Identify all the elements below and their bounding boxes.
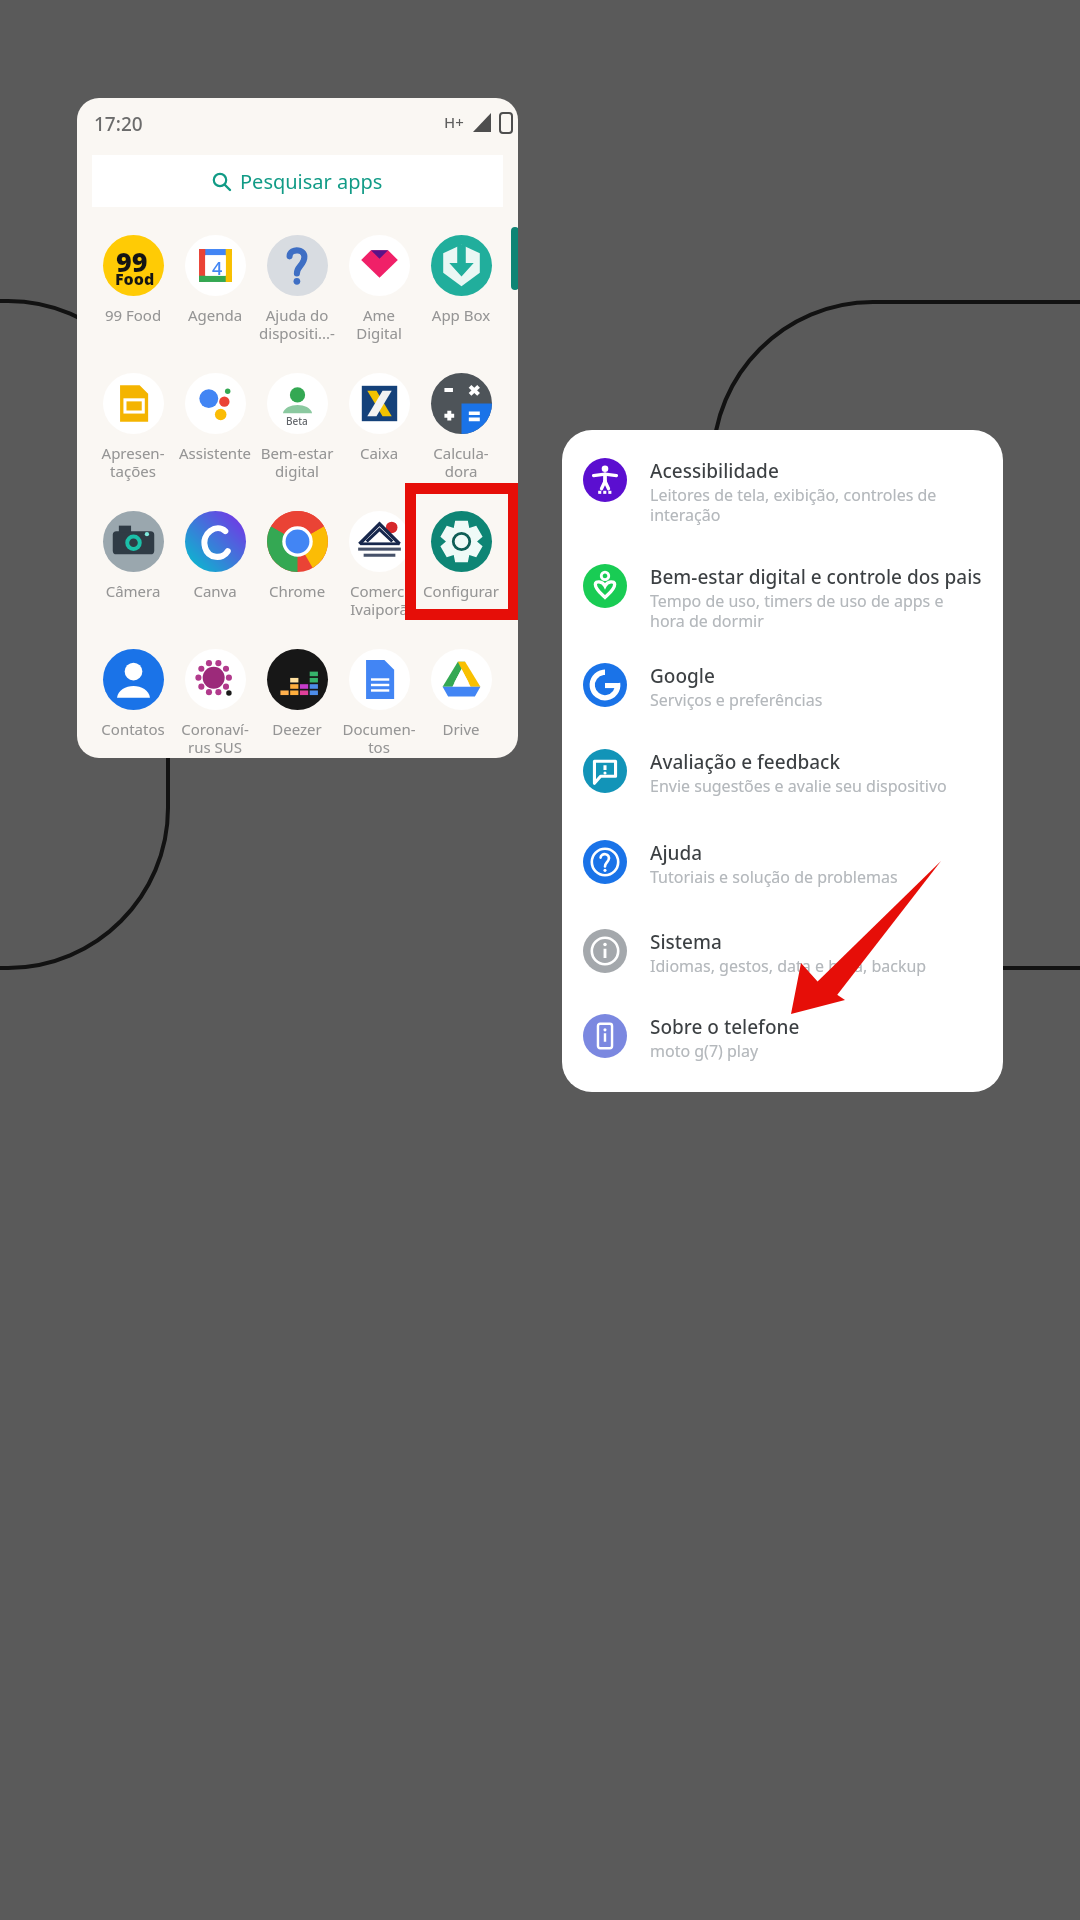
button[interactable]: Configurar (420, 511, 502, 621)
button[interactable]: Coronaví- rus SUS (174, 649, 256, 758)
button[interactable]: Deezer (256, 649, 338, 758)
staticText: Contatos (92, 719, 174, 739)
staticText: App Box (420, 305, 502, 325)
button[interactable]: Documen- tos (338, 649, 420, 758)
button[interactable]: Ajuda do dispositi...- (256, 235, 338, 345)
staticText: Calcula- dora (420, 443, 502, 482)
button[interactable]: Apresen- tações (92, 373, 174, 483)
staticText: 99 (116, 243, 148, 280)
staticText: Leitores de tela, exibição, controles de… (650, 484, 937, 525)
staticText: Documen- tos (338, 719, 420, 758)
staticText: Configurar (420, 581, 502, 601)
button[interactable]: Calcula- dora (420, 373, 502, 483)
button[interactable]: Bem-estar digital e controle dos pais (562, 544, 1003, 628)
staticText: 99 Food (92, 305, 174, 325)
button[interactable]: Pesquisar apps (92, 155, 503, 207)
button[interactable]: Comerci Ivaiporã (338, 511, 420, 621)
button[interactable]: Assistente (174, 373, 256, 483)
staticText: Assistente (174, 443, 256, 463)
staticText: Agenda (174, 305, 256, 325)
staticText: Bem-estar digital e controle dos pais (650, 564, 982, 590)
button[interactable]: Ame Digital (338, 235, 420, 345)
staticText: Envie sugestões e avalie seu dispositivo (650, 775, 947, 797)
button[interactable]: Sobre o telefone (562, 994, 1003, 1078)
staticText: Pesquisar apps (240, 168, 383, 195)
staticText: Acessibilidade (650, 458, 779, 484)
staticText: Apresen- tações (92, 443, 174, 482)
button[interactable]: Chrome (256, 511, 338, 621)
button[interactable]: Acessibilidade (562, 438, 1003, 522)
staticText: Canva (174, 581, 256, 601)
staticText: Beta (286, 414, 308, 428)
staticText: Drive (420, 719, 502, 739)
staticText: 17:20 (94, 111, 143, 137)
staticText: H+ (444, 112, 464, 132)
staticText: Chrome (256, 581, 338, 601)
button[interactable]: Avaliação e feedback (562, 729, 1003, 813)
button[interactable]: Beta (256, 373, 338, 483)
staticText: Avaliação e feedback (650, 749, 841, 775)
button[interactable]: Canva (174, 511, 256, 621)
staticText: Google (650, 663, 715, 689)
button[interactable]: Google (562, 643, 1003, 727)
button[interactable]: 99 (92, 235, 174, 345)
staticText: Serviços e preferências (650, 689, 823, 711)
staticText: Sistema (650, 929, 722, 955)
staticText: Sobre o telefone (650, 1014, 800, 1040)
button[interactable]: Caixa (338, 373, 420, 483)
staticText: Ajuda do dispositi...- (256, 305, 338, 344)
staticText: Ame Digital (338, 305, 420, 344)
staticText: Coronaví- rus SUS (174, 719, 256, 758)
staticText: Bem-estar digital (256, 443, 338, 482)
button[interactable]: Sistema (562, 909, 1003, 993)
staticText: Idiomas, gestos, data e hora, backup (650, 955, 927, 977)
staticText: moto g(7) play (650, 1040, 759, 1062)
staticText: Deezer (256, 719, 338, 739)
staticText: Tutoriais e solução de problemas (650, 866, 898, 888)
button[interactable]: Drive (420, 649, 502, 758)
staticText: Caixa (338, 443, 420, 463)
staticText: Food (115, 268, 155, 290)
staticText: Tempo de uso, timers de uso de apps e ho… (650, 590, 944, 631)
staticText: Comerci Ivaiporã (338, 581, 420, 620)
button[interactable]: Câmera (92, 511, 174, 621)
button[interactable]: Contatos (92, 649, 174, 758)
staticText: 4 (212, 256, 223, 281)
staticText: Ajuda (650, 840, 703, 866)
staticText: Câmera (92, 581, 174, 601)
button[interactable]: Ajuda (562, 820, 1003, 904)
button[interactable]: App Box (420, 235, 502, 345)
button[interactable]: 4 (174, 235, 256, 345)
